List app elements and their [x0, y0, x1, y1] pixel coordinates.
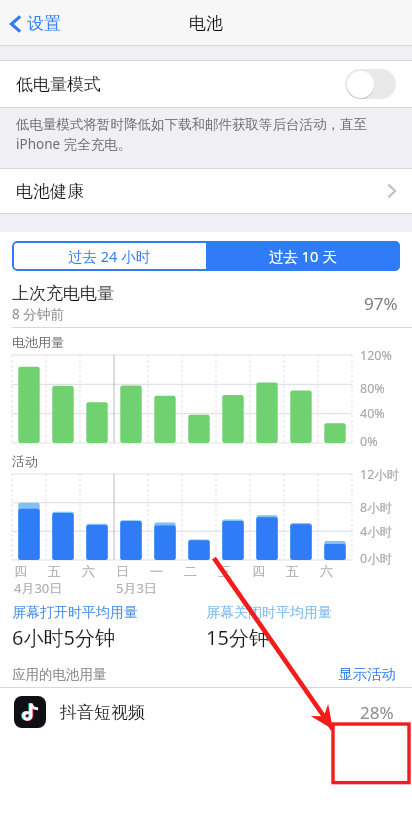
- staticText: 120%: [360, 347, 392, 364]
- staticText: 上次充电电量: [12, 283, 114, 304]
- staticText: 40%: [360, 405, 385, 422]
- staticText: 显示活动: [338, 665, 396, 683]
- staticText: 过去 10 天: [269, 246, 337, 266]
- staticText: 抖音短视频: [60, 702, 145, 723]
- button[interactable]: 过去 24 小时: [12, 241, 206, 271]
- staticText: 8 分钟前: [12, 305, 64, 323]
- staticText: 4月30日: [14, 579, 63, 596]
- staticText: 0%: [360, 433, 378, 450]
- staticText: 5月3日: [116, 579, 157, 596]
- staticText: 8小时: [360, 499, 393, 516]
- staticText: 4小时: [360, 523, 393, 540]
- staticText: 六: [82, 563, 95, 579]
- staticText: 屏幕关闭时平均用量: [206, 604, 332, 622]
- button[interactable]: 电池健康: [0, 168, 412, 214]
- staticText: 过去 24 小时: [68, 246, 151, 266]
- staticText: 97%: [364, 292, 398, 315]
- staticText: 15分钟: [206, 624, 269, 651]
- button[interactable]: 设置: [0, 7, 71, 40]
- staticText: 三: [218, 563, 231, 579]
- staticText: 五: [48, 563, 61, 579]
- staticText: 电池: [189, 13, 223, 34]
- staticText: 电池用量: [12, 334, 64, 350]
- staticText: 五: [286, 563, 299, 579]
- staticText: 低电量模式: [16, 74, 101, 95]
- staticText: 六: [320, 563, 333, 579]
- button[interactable]: 上次充电电量: [12, 279, 398, 327]
- button[interactable]: 显示活动: [334, 663, 400, 685]
- staticText: 低电量模式将暂时降低如下载和邮件获取等后台活动，直至 iPhone 完全充电。: [16, 116, 367, 153]
- staticText: 电池健康: [16, 181, 84, 202]
- button[interactable]: 过去 10 天: [206, 241, 400, 271]
- staticText: 一: [150, 563, 163, 579]
- staticText: 日: [116, 563, 129, 579]
- staticText: 设置: [27, 13, 61, 34]
- button[interactable]: 低电量模式开关: [345, 69, 396, 99]
- staticText: 活动: [12, 453, 38, 469]
- staticText: 12小时: [360, 466, 400, 483]
- staticText: 应用的电池用量: [12, 666, 107, 683]
- staticText: 二: [184, 563, 197, 579]
- button[interactable]: 低电量模式: [0, 60, 412, 108]
- staticText: 四: [252, 563, 265, 579]
- staticText: 屏幕打开时平均用量: [12, 604, 138, 622]
- staticText: 80%: [360, 380, 385, 397]
- staticText: 0小时: [360, 550, 393, 567]
- button[interactable]: 抖音短视频: [0, 688, 412, 736]
- staticText: 四: [14, 563, 27, 579]
- staticText: 6小时5分钟: [12, 624, 115, 651]
- staticText: 28%: [360, 701, 394, 724]
